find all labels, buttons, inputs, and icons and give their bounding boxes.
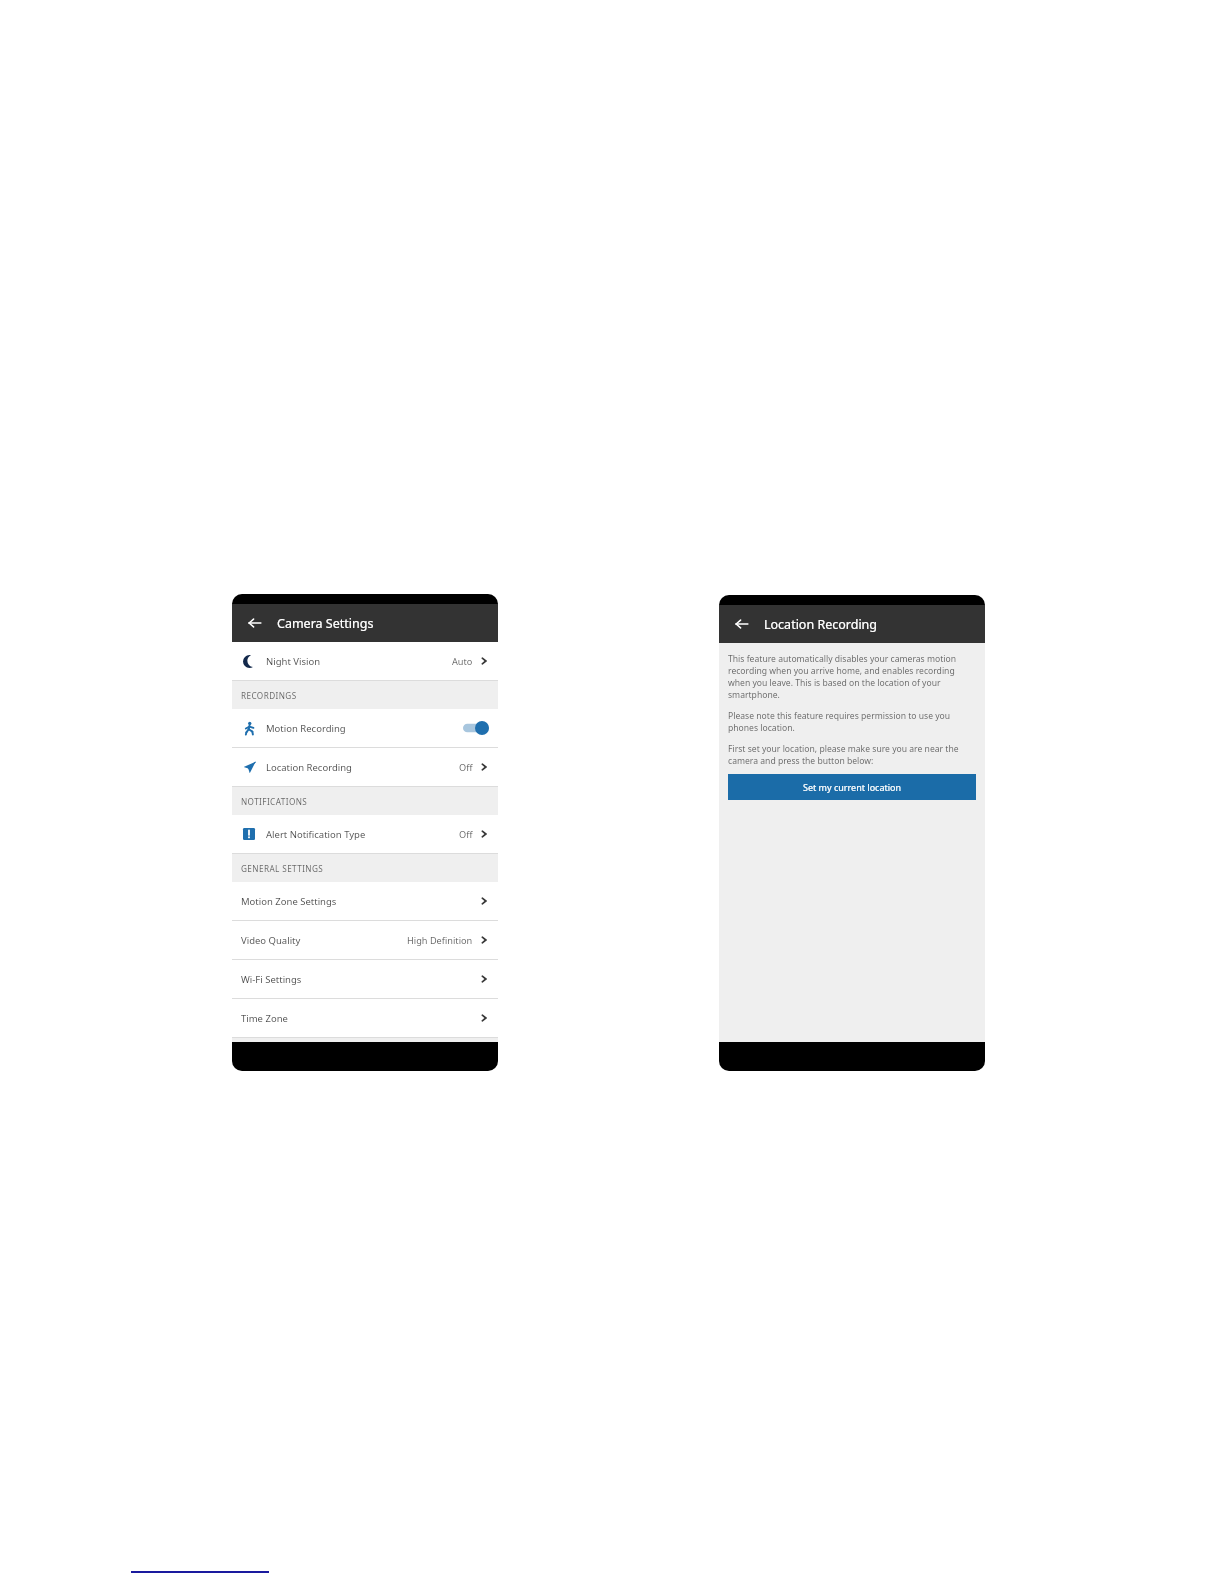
staticText: First set your location, please make sur…	[728, 743, 976, 767]
staticText: Alert Notification Type	[266, 828, 366, 841]
staticText: Off	[459, 761, 473, 774]
staticText: Video Quality	[241, 934, 301, 947]
staticText: Camera Settings	[277, 615, 374, 632]
staticText: Motion Recording	[266, 722, 346, 735]
staticText: GENERAL SETTINGS	[241, 863, 324, 874]
staticText: RECORDINGS	[241, 690, 297, 701]
staticText: Wi-Fi Settings	[241, 973, 302, 986]
button[interactable]: Alert Notification Type	[232, 815, 498, 854]
staticText: Auto	[452, 655, 473, 668]
staticText: Off	[459, 828, 473, 841]
staticText: NOTIFICATIONS	[241, 796, 308, 807]
button[interactable]: Video Quality	[232, 921, 498, 960]
staticText: Night Vision	[266, 655, 321, 668]
button[interactable]: Motion Recording toggle	[463, 721, 489, 735]
button[interactable]: Wi-Fi Settings	[232, 960, 498, 999]
button[interactable]: Back	[244, 612, 266, 634]
staticText: Please note this feature requires permis…	[728, 710, 976, 734]
staticText: High Definition	[407, 934, 473, 947]
staticText: Motion Zone Settings	[241, 895, 337, 908]
staticText: Location Recording	[266, 761, 352, 774]
staticText: Location Recording	[764, 616, 878, 633]
button[interactable]: Location Recording	[232, 748, 498, 787]
button[interactable]: Set my current location	[728, 774, 976, 800]
button[interactable]: Back	[731, 613, 753, 635]
button[interactable]: Time Zone	[232, 999, 498, 1038]
staticText: Time Zone	[241, 1012, 288, 1025]
staticText: This feature automatically disables your…	[728, 653, 976, 701]
staticText: Set my current location	[803, 781, 902, 793]
button[interactable]: Motion Recording	[232, 709, 498, 748]
button[interactable]: Night Vision	[232, 642, 498, 681]
button[interactable]: Motion Zone Settings	[232, 882, 498, 921]
